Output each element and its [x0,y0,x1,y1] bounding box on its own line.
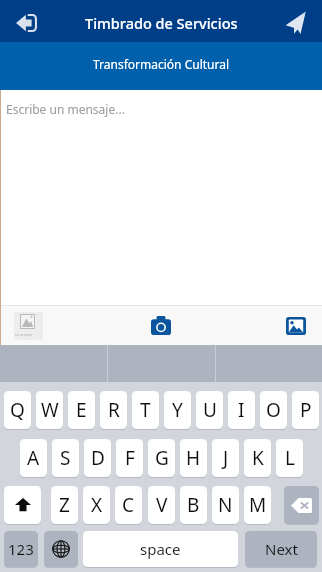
staticText: C [122,492,135,518]
staticText: D [91,445,105,471]
staticText: J [223,445,229,471]
button[interactable]: R [100,391,127,429]
staticText: X [91,492,103,518]
button[interactable]: L [276,439,303,477]
button[interactable]: D [84,439,111,477]
button[interactable]: Q [4,391,31,429]
staticText: 123 [8,539,34,559]
button[interactable]: Send [280,0,309,42]
button[interactable]: Camera [107,306,215,345]
staticText: Next [265,539,298,559]
staticText: G [155,445,169,471]
staticText: I [238,397,245,423]
staticText: M [249,492,267,518]
staticText: Z [59,492,70,518]
button[interactable]: H [180,439,207,477]
staticText: U [203,397,217,423]
button[interactable]: K [244,439,271,477]
staticText: T [140,397,151,423]
staticText: Q [10,397,25,423]
button[interactable]: Numbers [4,531,38,567]
button[interactable]: A [20,439,47,477]
staticText: B [187,492,200,518]
button[interactable]: C [115,486,142,524]
staticText: V [156,492,168,518]
button[interactable]: G [148,439,175,477]
button[interactable]: N [212,486,239,524]
staticText: W [41,397,59,423]
button[interactable]: J [212,439,239,477]
button[interactable]: Backspace [284,486,319,524]
staticText: Escribe un mensaje... [6,101,125,117]
button[interactable]: E [68,391,95,429]
staticText: L [285,445,295,471]
button[interactable]: I [228,391,255,429]
staticText: Timbrado de Servicios [85,13,238,33]
button[interactable]: X [83,486,110,524]
button[interactable]: Change keyboard [44,531,78,567]
staticText: H [186,445,201,471]
staticText: P [300,397,312,423]
button[interactable]: Gallery [215,306,322,345]
button[interactable]: Next [245,531,317,567]
staticText: Y [172,397,183,423]
staticText: S [60,445,71,471]
button[interactable]: T [132,391,159,429]
staticText: A [27,445,40,471]
staticText: F [125,445,135,471]
button[interactable]: P [292,391,319,429]
staticText: N [218,492,233,518]
button[interactable]: M [244,486,271,524]
staticText: O [266,397,281,423]
button[interactable]: U [196,391,223,429]
button[interactable]: Y [164,391,191,429]
button[interactable]: F [116,439,143,477]
button[interactable]: S [52,439,79,477]
button[interactable]: Z [51,486,78,524]
button[interactable]: space [83,531,238,567]
button[interactable]: V [148,486,175,524]
staticText: space [140,539,181,559]
button[interactable]: Back [13,0,42,42]
staticText: E [76,397,87,423]
button[interactable]: Shift [4,486,41,524]
button[interactable]: O [260,391,287,429]
button[interactable]: B [180,486,207,524]
button[interactable]: W [36,391,63,429]
staticText: R [108,397,120,423]
staticText: K [252,445,264,471]
staticText: Transformación Cultural [93,56,230,72]
button[interactable]: Attached image [0,306,107,345]
staticText: no se pudo cargar la imagen [15,332,43,336]
